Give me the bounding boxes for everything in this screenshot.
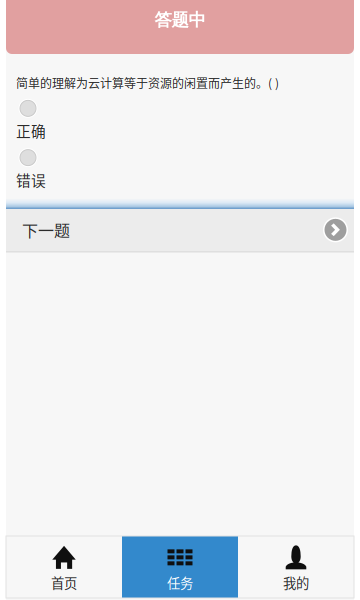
staticText: 下一题 bbox=[22, 218, 70, 241]
staticText: 答题中 bbox=[154, 9, 205, 31]
staticText: 简单的理解为云计算等于资源的闲置而产生的。( ) bbox=[16, 74, 279, 91]
staticText: 正确 bbox=[16, 120, 46, 141]
button[interactable]: 错误 bbox=[6, 148, 354, 190]
button[interactable]: 任务 bbox=[122, 536, 238, 598]
staticText: 我的 bbox=[283, 573, 309, 592]
staticText: 首页 bbox=[51, 573, 77, 592]
button[interactable]: 下一题 bbox=[6, 207, 354, 252]
staticText: 错误 bbox=[16, 169, 46, 190]
button[interactable]: 首页 bbox=[6, 536, 122, 598]
button[interactable]: 我的 bbox=[238, 536, 354, 598]
staticText: 任务 bbox=[167, 573, 193, 592]
button[interactable]: 正确 bbox=[6, 99, 354, 141]
